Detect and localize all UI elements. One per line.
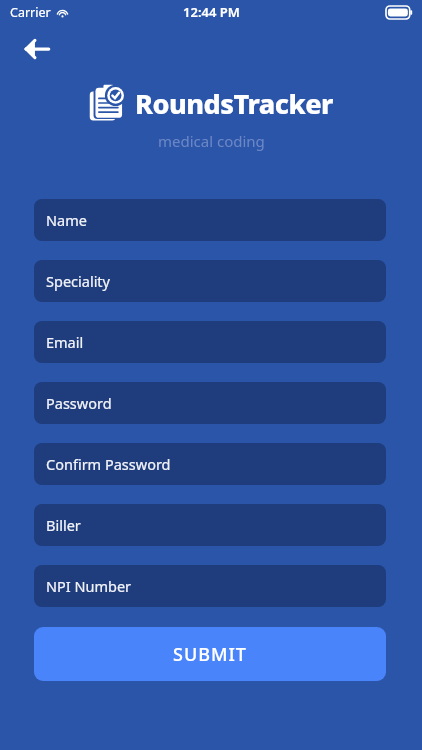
- staticText: Speciality: [46, 271, 111, 291]
- button[interactable]: Speciality: [34, 260, 386, 302]
- staticText: Password: [46, 393, 112, 413]
- button[interactable]: Email: [34, 321, 386, 363]
- staticText: Name: [46, 210, 87, 230]
- staticText: Biller: [46, 515, 81, 535]
- staticText: Carrier: [10, 4, 51, 21]
- button[interactable]: Biller: [34, 504, 386, 546]
- button[interactable]: SUBMIT: [34, 627, 386, 681]
- button[interactable]: Back: [14, 26, 60, 72]
- staticText: Confirm Password: [46, 454, 171, 474]
- staticText: Email: [46, 332, 84, 352]
- staticText: medical coding: [158, 131, 265, 151]
- staticText: RoundsTracker: [135, 85, 333, 122]
- staticText: SUBMIT: [173, 642, 247, 667]
- staticText: 12:44 PM: [183, 3, 240, 21]
- button[interactable]: Password: [34, 382, 386, 424]
- button[interactable]: Name: [34, 199, 386, 241]
- staticText: NPI Number: [46, 576, 132, 596]
- button[interactable]: NPI Number: [34, 565, 386, 607]
- button[interactable]: Confirm Password: [34, 443, 386, 485]
